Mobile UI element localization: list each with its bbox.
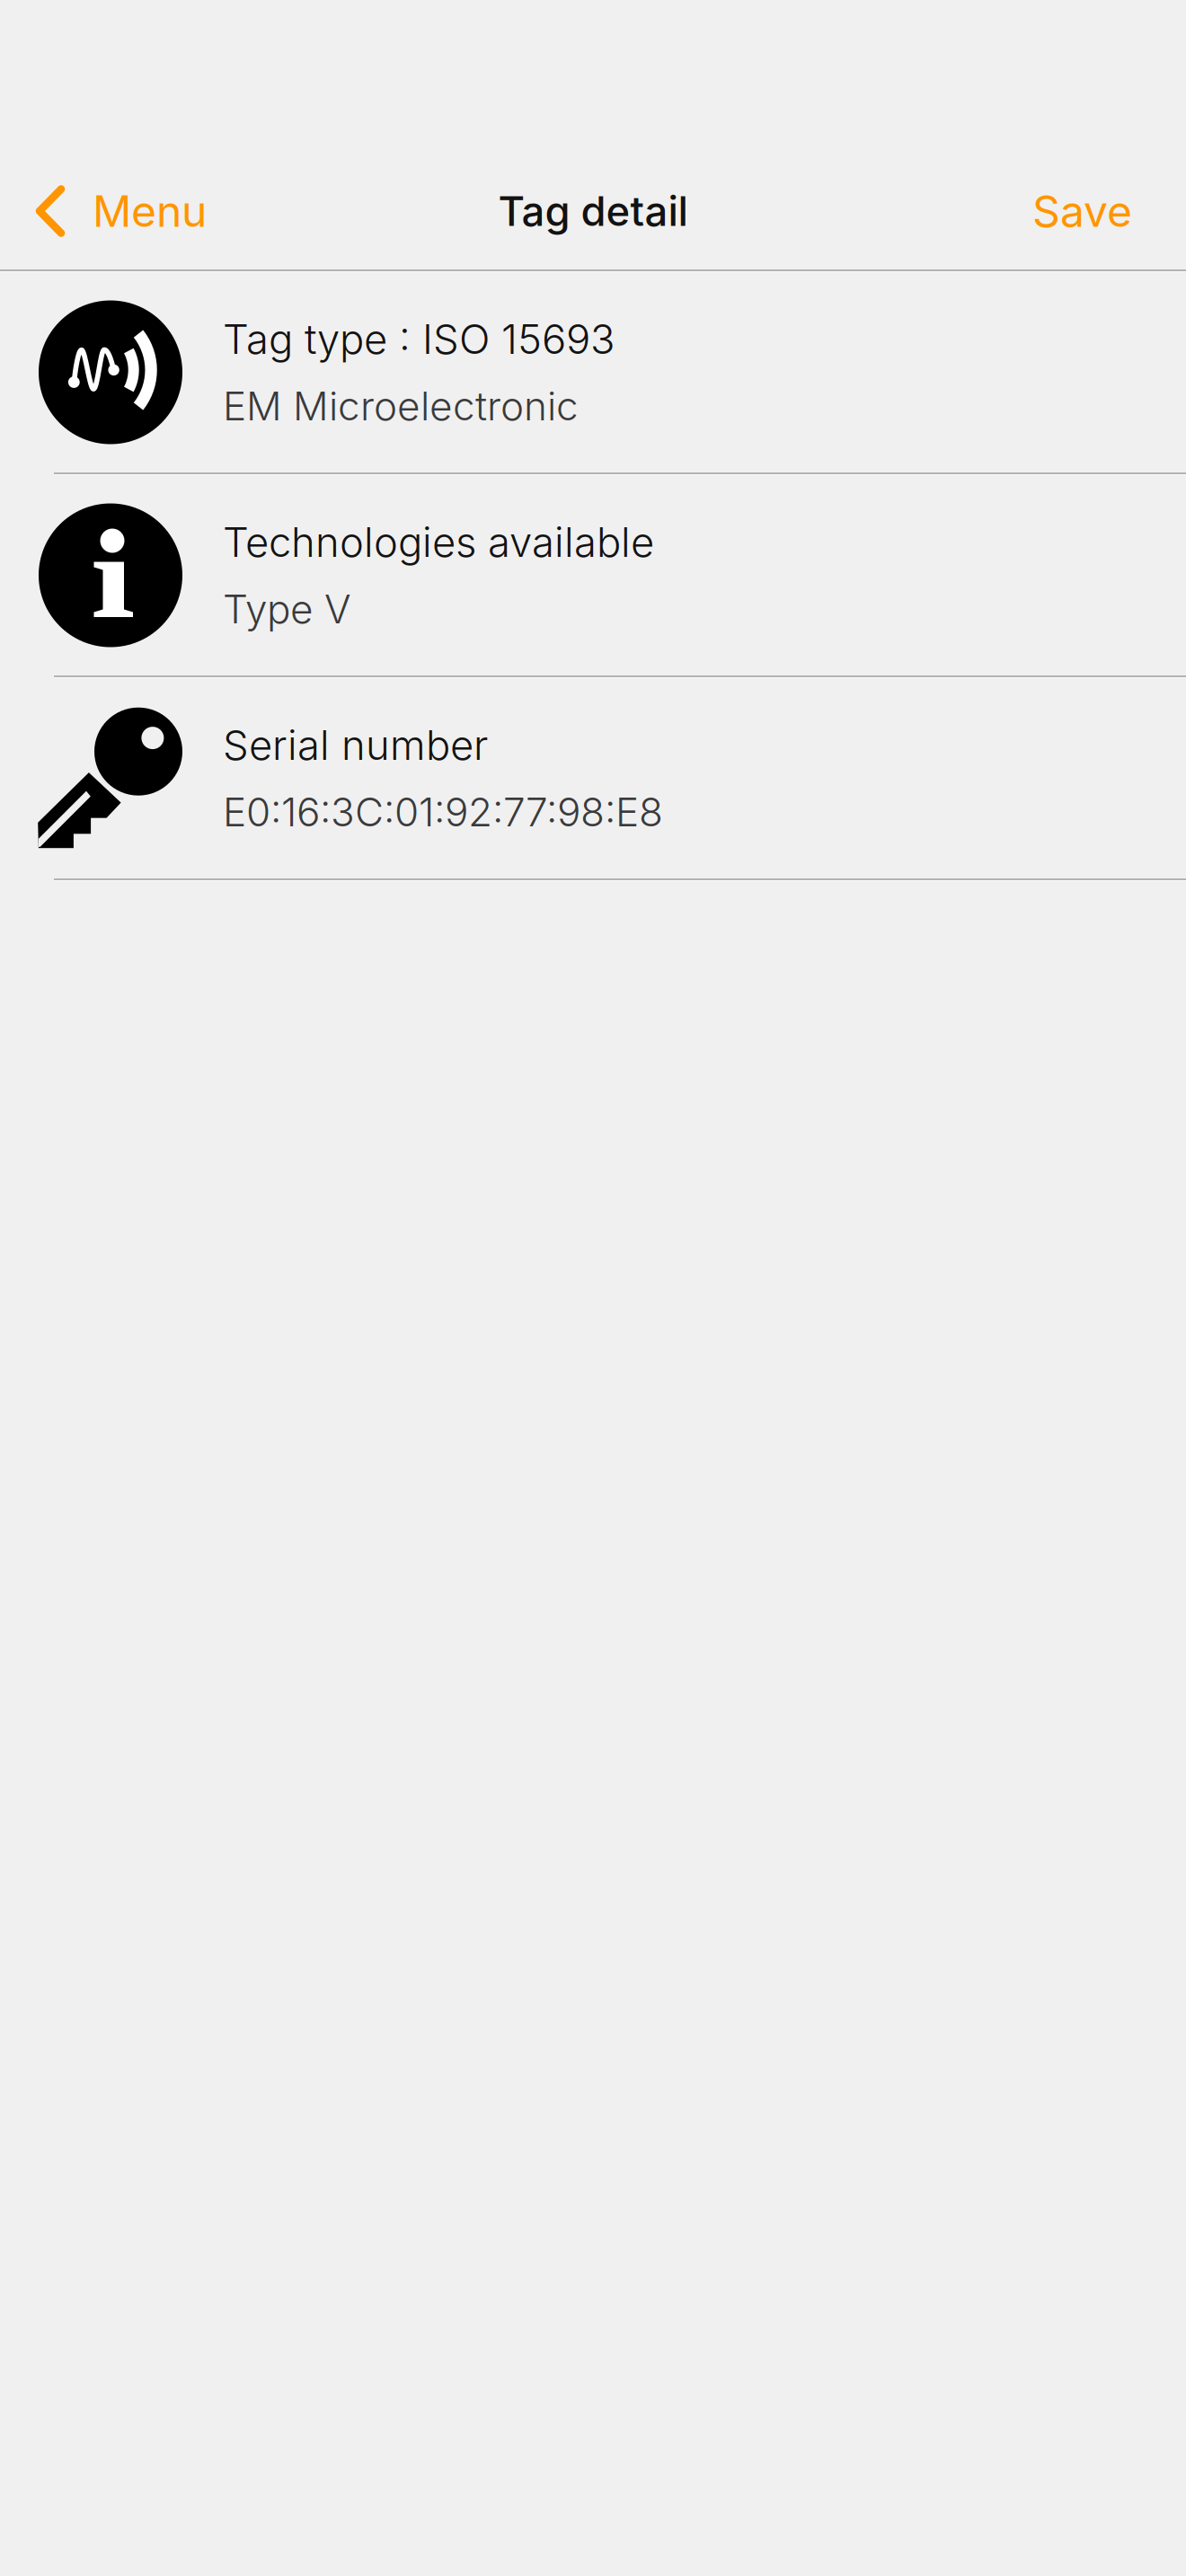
- button[interactable]: Serial number: [0, 678, 1186, 881]
- button[interactable]: Save: [1011, 157, 1186, 265]
- button[interactable]: Technologies available: [0, 475, 1186, 678]
- staticText: Tag detail: [498, 187, 688, 235]
- button[interactable]: Tag type : ISO 15693: [0, 272, 1186, 475]
- staticText: Serial number: [223, 721, 488, 769]
- button[interactable]: Back to Menu: [0, 157, 228, 265]
- staticText: EM Microelectronic: [223, 383, 579, 429]
- staticText: Menu: [93, 186, 207, 236]
- staticText: Type V: [223, 586, 351, 632]
- staticText: Tag type : ISO 15693: [223, 315, 615, 363]
- staticText: Technologies available: [223, 518, 654, 566]
- staticText: Save: [1032, 186, 1132, 236]
- staticText: E0:16:3C:01:92:77:98:E8: [223, 789, 663, 835]
